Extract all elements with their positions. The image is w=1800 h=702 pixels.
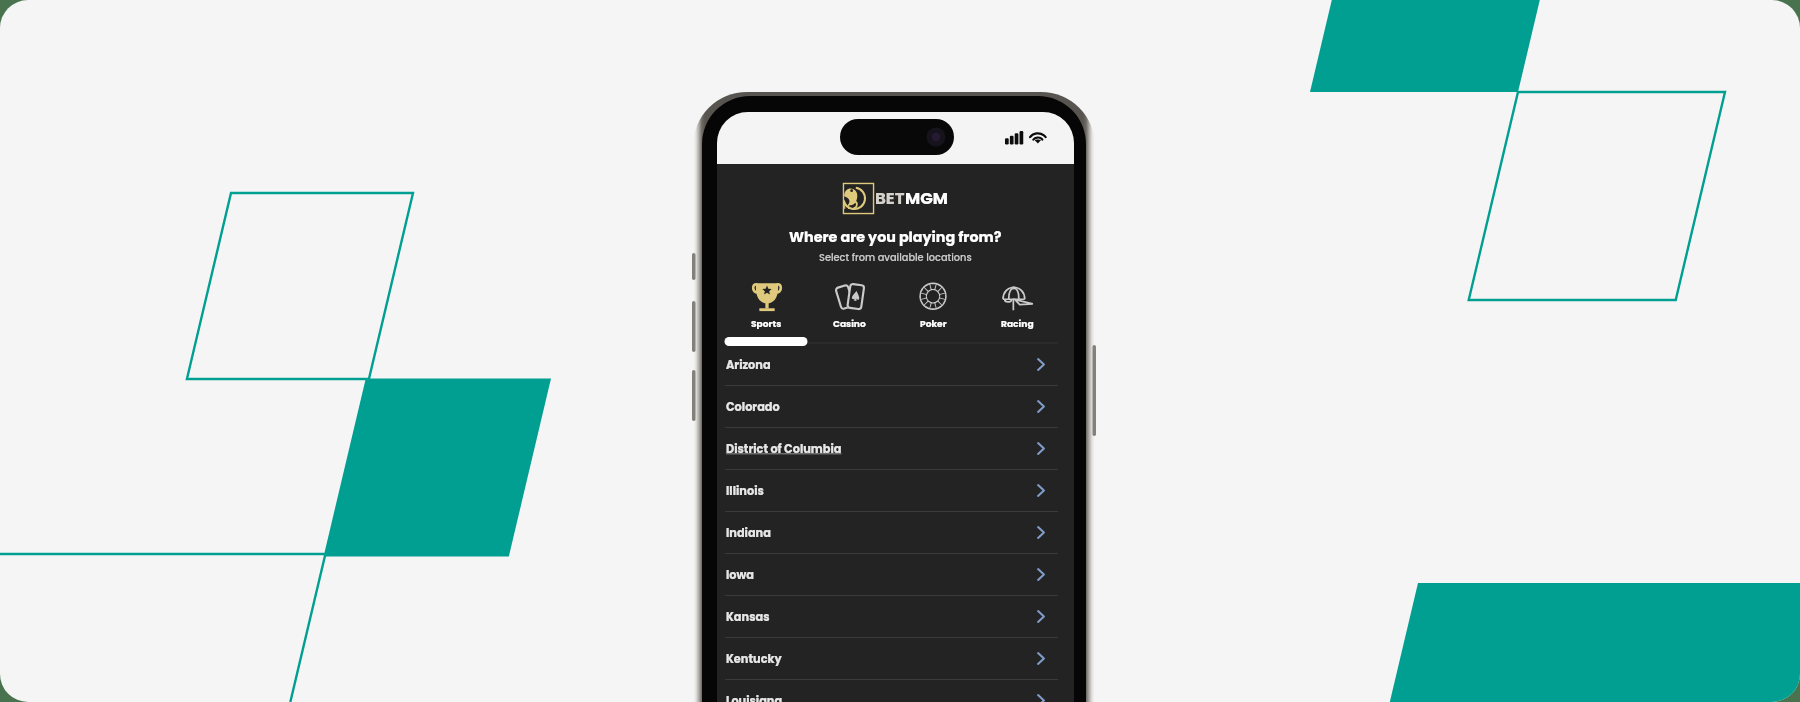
button[interactable]: District of Columbia xyxy=(717,428,1074,469)
other: Open Illinois xyxy=(1037,484,1045,497)
staticText: Arizona xyxy=(726,357,771,373)
staticText: District of Columbia xyxy=(726,441,842,457)
staticText: MGM xyxy=(905,187,948,210)
staticText: Racing xyxy=(1001,317,1034,330)
staticText: BET xyxy=(875,187,905,210)
staticText: Select from available locations xyxy=(819,251,972,265)
staticText: Illinois xyxy=(726,483,764,499)
button[interactable]: Louisiana xyxy=(717,680,1074,702)
other: Open Louisiana xyxy=(1037,694,1045,702)
staticText: Iowa xyxy=(726,567,754,583)
other: Open Iowa xyxy=(1037,568,1045,581)
staticText: Kansas xyxy=(726,609,770,625)
button[interactable]: Sports xyxy=(725,282,808,330)
other: Open Kentucky xyxy=(1037,652,1045,665)
staticText: Where are you playing from? xyxy=(789,227,1002,247)
other: Open Colorado xyxy=(1037,400,1045,413)
button[interactable]: Arizona xyxy=(717,344,1074,385)
other: Signal and Wi-Fi status xyxy=(1005,131,1047,147)
staticText: Sports xyxy=(751,317,782,330)
button[interactable]: Kansas xyxy=(717,596,1074,637)
button[interactable]: Indiana xyxy=(717,512,1074,553)
other: Open District of Columbia xyxy=(1037,442,1045,455)
staticText: Poker xyxy=(920,317,947,330)
button[interactable]: Colorado xyxy=(717,386,1074,427)
staticText: Kentucky xyxy=(726,651,782,667)
button[interactable]: Poker xyxy=(891,282,975,330)
button[interactable]: Casino xyxy=(808,282,891,330)
button[interactable]: Kentucky xyxy=(717,638,1074,679)
staticText: Casino xyxy=(833,317,866,330)
button[interactable]: Illinois xyxy=(717,470,1074,511)
staticText: Colorado xyxy=(726,399,780,415)
staticText: Louisiana xyxy=(726,693,783,702)
staticText: Indiana xyxy=(726,525,771,541)
other: Open Arizona xyxy=(1037,358,1045,371)
other: Open Kansas xyxy=(1037,610,1045,623)
button[interactable]: Racing xyxy=(975,282,1059,330)
other: Open Indiana xyxy=(1037,526,1045,539)
button[interactable]: Iowa xyxy=(717,554,1074,595)
